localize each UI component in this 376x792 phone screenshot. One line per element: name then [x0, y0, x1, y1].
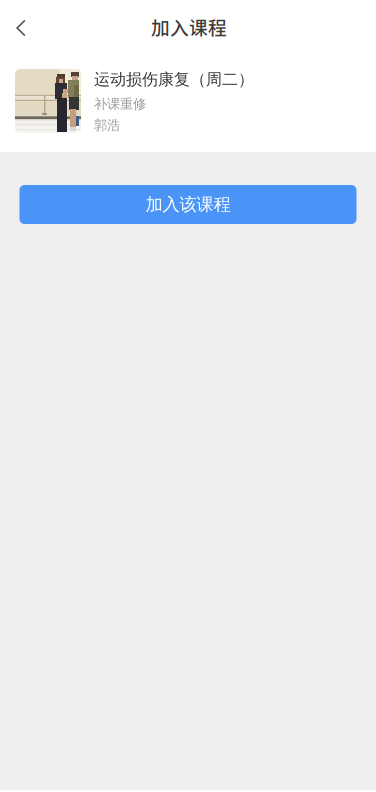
- staticText: 郭浩: [94, 117, 120, 133]
- button[interactable]: 返回: [1, 8, 41, 48]
- staticText: 加入该课程: [145, 194, 230, 215]
- staticText: 加入课程: [151, 13, 227, 40]
- staticText: 补课重修: [94, 96, 146, 112]
- staticText: 运动损伤康复（周二）: [94, 70, 254, 89]
- button[interactable]: 加入该课程: [19, 185, 356, 224]
